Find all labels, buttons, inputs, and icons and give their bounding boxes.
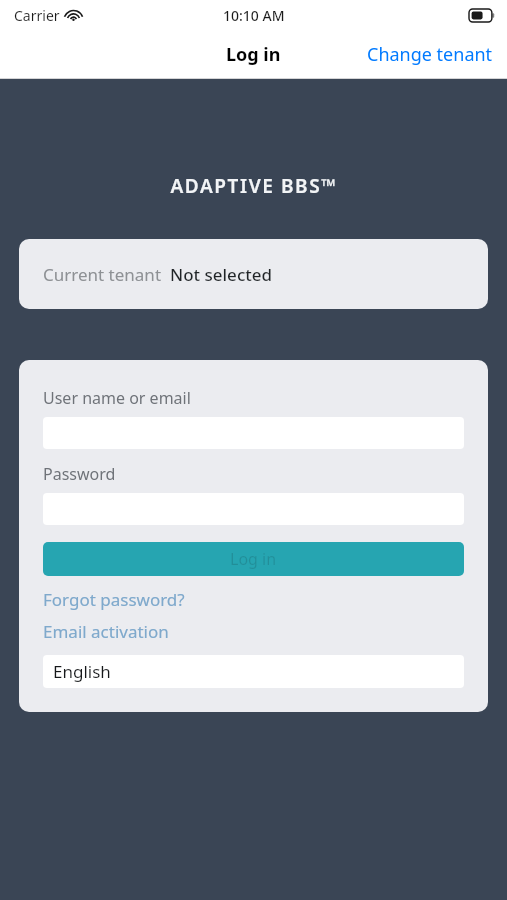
- staticText: Carrier: [14, 6, 60, 25]
- staticText: Not selected: [170, 263, 273, 286]
- staticText: Current tenant: [43, 263, 162, 286]
- staticText: ADAPTIVE BBS™: [170, 173, 338, 199]
- staticText: User name or email: [43, 387, 191, 409]
- staticText: 10:10 AM: [223, 6, 285, 25]
- staticText: Forgot password?: [43, 588, 185, 611]
- staticText: English: [53, 660, 111, 683]
- button[interactable]: English: [43, 655, 464, 688]
- staticText: Email activation: [43, 620, 169, 643]
- staticText: Change tenant: [367, 42, 493, 67]
- staticText: Log in: [230, 548, 277, 570]
- button[interactable]: Log in: [43, 542, 464, 576]
- button[interactable]: Email activation: [43, 620, 169, 643]
- staticText: Log in: [226, 42, 281, 67]
- button[interactable]: Change tenant: [353, 34, 507, 75]
- staticText: Password: [43, 463, 116, 485]
- button[interactable]: Forgot password?: [43, 588, 185, 611]
- button[interactable]: Current tenant: [19, 239, 488, 309]
